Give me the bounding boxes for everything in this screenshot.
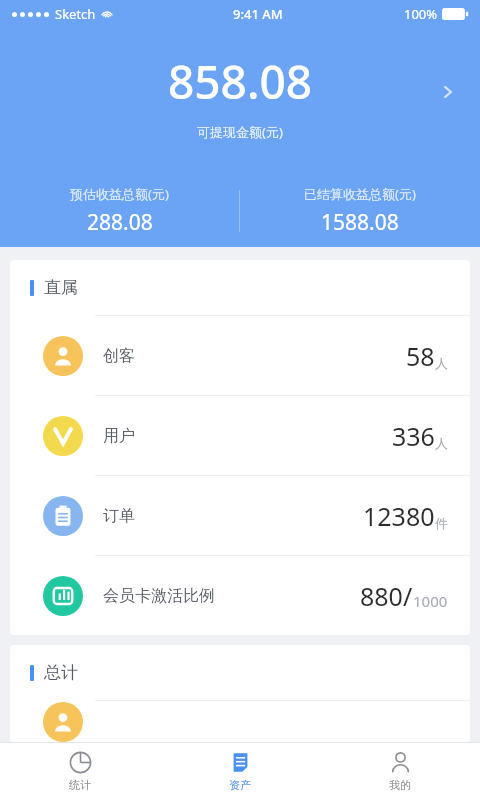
staticText: 已结算收益总额(元) <box>304 185 416 203</box>
button[interactable]: 统计 <box>0 743 160 800</box>
staticText: 创客 <box>103 346 135 366</box>
staticText: 预估收益总额(元) <box>70 185 169 203</box>
button[interactable]: 订单 <box>10 476 470 555</box>
staticText: Sketch <box>55 5 96 23</box>
button[interactable]: 创客 <box>10 316 470 395</box>
staticText: 858.08 <box>168 50 313 113</box>
staticText: 订单 <box>103 506 135 526</box>
staticText: 资产 <box>229 778 251 792</box>
button[interactable]: 我的 <box>320 743 480 800</box>
staticText: 会员卡激活比例 <box>103 586 215 606</box>
staticText: 12380 <box>363 499 435 533</box>
staticText: 用户 <box>103 426 135 446</box>
button[interactable]: 查看详情 <box>428 72 468 112</box>
staticText: 人 <box>435 435 448 451</box>
button[interactable]: 用户 <box>10 396 470 475</box>
staticText: 1588.08 <box>321 208 399 237</box>
staticText: 100% <box>404 5 438 23</box>
staticText: 总计 <box>44 662 78 683</box>
staticText: 336 <box>392 419 435 453</box>
staticText: 人 <box>435 355 448 371</box>
staticText: 288.08 <box>87 208 153 237</box>
button[interactable] <box>10 701 470 742</box>
button[interactable]: 已结算收益总额(元) <box>240 185 480 237</box>
staticText: 880/ <box>360 579 413 613</box>
staticText: 统计 <box>69 778 91 792</box>
staticText: 直属 <box>44 277 78 298</box>
button[interactable]: 资产 <box>160 743 320 800</box>
staticText: 件 <box>435 515 448 531</box>
staticText: 58 <box>406 339 435 373</box>
staticText: 9:41 AM <box>233 5 283 23</box>
staticText: 我的 <box>389 778 411 792</box>
staticText: 可提现金额(元) <box>197 123 283 141</box>
button[interactable]: 会员卡激活比例 <box>10 556 470 635</box>
button[interactable]: 预估收益总额(元) <box>0 185 239 237</box>
staticText: 1000 <box>413 591 448 611</box>
